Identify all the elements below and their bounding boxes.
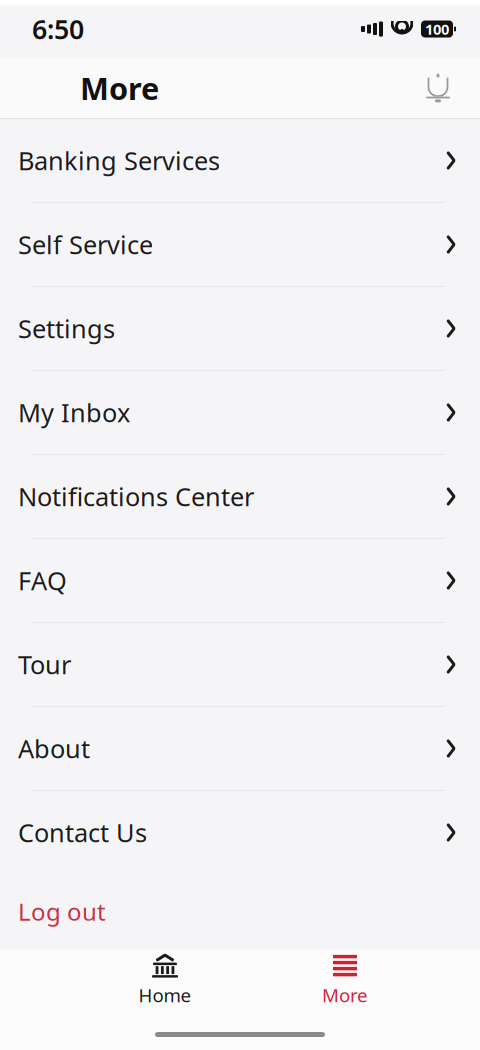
button[interactable]: Self Service: [0, 203, 480, 286]
staticText: FAQ: [18, 564, 67, 597]
staticText: Tour: [18, 648, 71, 681]
staticText: More: [80, 68, 159, 108]
button[interactable]: Notifications: [414, 64, 462, 112]
button[interactable]: Tour: [0, 623, 480, 706]
staticText: Log out: [18, 896, 106, 927]
staticText: Home: [138, 983, 191, 1007]
staticText: 6:50: [32, 11, 84, 47]
button[interactable]: Log out: [0, 874, 480, 949]
staticText: 100: [425, 19, 449, 39]
staticText: Notifications Center: [18, 480, 254, 513]
button[interactable]: Contact Us: [0, 791, 480, 874]
button[interactable]: Notifications Center: [0, 455, 480, 538]
button[interactable]: About: [0, 707, 480, 790]
button[interactable]: More: [255, 949, 435, 1011]
button[interactable]: Banking Services: [0, 119, 480, 202]
staticText: More: [322, 983, 368, 1007]
staticText: My Inbox: [18, 396, 130, 429]
staticText: Settings: [18, 312, 115, 345]
button[interactable]: Settings: [0, 287, 480, 370]
staticText: About: [18, 732, 90, 765]
staticText: Self Service: [18, 228, 153, 261]
button[interactable]: FAQ: [0, 539, 480, 622]
staticText: Banking Services: [18, 144, 220, 177]
button[interactable]: My Inbox: [0, 371, 480, 454]
staticText: Contact Us: [18, 816, 147, 849]
button[interactable]: Home: [75, 949, 255, 1011]
